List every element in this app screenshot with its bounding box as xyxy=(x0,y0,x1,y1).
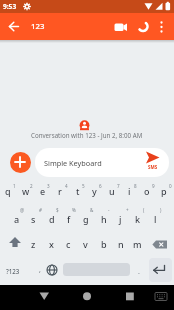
button[interactable] xyxy=(73,287,101,308)
staticText: k xyxy=(135,213,141,225)
button[interactable]: x xyxy=(43,236,60,251)
staticText: 0 xyxy=(169,183,172,189)
staticText: ( xyxy=(143,207,145,213)
button[interactable] xyxy=(152,287,172,308)
button[interactable] xyxy=(30,287,58,308)
button[interactable] xyxy=(10,152,31,173)
button[interactable] xyxy=(35,148,169,177)
button[interactable]: g xyxy=(77,211,94,226)
button[interactable]: o xyxy=(138,183,155,198)
button[interactable]: n xyxy=(112,236,129,251)
staticText: b xyxy=(101,238,107,250)
button[interactable] xyxy=(149,258,172,282)
button[interactable]: r xyxy=(51,183,68,198)
staticText: u xyxy=(109,185,115,197)
button[interactable]: y xyxy=(86,183,103,198)
staticText: 2 xyxy=(30,183,33,189)
button[interactable]: i xyxy=(121,183,138,198)
button[interactable]: z xyxy=(25,236,42,251)
staticText: n xyxy=(118,238,124,250)
staticText: 123 xyxy=(31,21,45,32)
button[interactable]: p xyxy=(155,183,172,198)
button[interactable]: h xyxy=(95,211,112,226)
staticText: p xyxy=(161,185,167,197)
staticText: r xyxy=(58,185,62,197)
button[interactable]: m xyxy=(129,236,146,251)
staticText: c xyxy=(66,238,71,250)
button[interactable]: f xyxy=(60,211,77,226)
staticText: s xyxy=(31,213,36,225)
staticText: Conversation with 123 - Jun 2, 8:00 AM xyxy=(31,131,143,139)
button[interactable]: b xyxy=(95,236,112,251)
staticText: z xyxy=(31,238,36,250)
staticText: Simple Keyboard xyxy=(44,158,102,168)
button[interactable] xyxy=(148,233,170,251)
staticText: 3 xyxy=(47,183,50,189)
staticText: % xyxy=(72,207,76,213)
staticText: g xyxy=(83,213,89,225)
button[interactable]: a xyxy=(8,211,25,226)
staticText: m xyxy=(133,238,142,250)
button[interactable]: t xyxy=(69,183,86,198)
staticText: . xyxy=(138,267,140,277)
staticText: ) xyxy=(160,207,162,213)
staticText: j xyxy=(119,213,122,225)
button[interactable] xyxy=(2,233,24,251)
staticText: 9:53 xyxy=(3,2,17,11)
staticText: x xyxy=(49,238,54,250)
button[interactable] xyxy=(4,16,24,37)
staticText: w xyxy=(22,185,30,197)
button[interactable] xyxy=(133,16,155,37)
staticText: i xyxy=(128,185,131,197)
staticText: 7 xyxy=(117,183,120,189)
staticText: & xyxy=(90,207,94,213)
button[interactable]: . xyxy=(133,265,145,279)
staticText: e xyxy=(40,185,46,197)
button[interactable]: w xyxy=(17,183,34,198)
staticText: + xyxy=(126,207,129,213)
button[interactable]: , xyxy=(34,263,46,277)
staticText: y xyxy=(92,185,97,197)
button[interactable]: q xyxy=(0,183,16,198)
button[interactable]: j xyxy=(112,211,129,226)
staticText: 1 xyxy=(13,183,16,189)
staticText: 5 xyxy=(82,183,85,189)
staticText: d xyxy=(49,213,55,225)
staticText: f xyxy=(67,213,71,225)
button[interactable]: ?123 xyxy=(2,264,24,278)
staticText: 4 xyxy=(65,183,68,189)
button[interactable]: d xyxy=(43,211,60,226)
staticText: o xyxy=(144,185,150,197)
button[interactable]: k xyxy=(129,211,146,226)
staticText: 6 xyxy=(99,183,102,189)
button[interactable] xyxy=(115,287,143,308)
staticText: 9 xyxy=(152,183,155,189)
button[interactable]: e xyxy=(34,183,51,198)
staticText: 8 xyxy=(134,183,137,189)
button[interactable]: l xyxy=(147,211,164,226)
staticText: l xyxy=(154,213,157,225)
button[interactable]: u xyxy=(103,183,120,198)
button[interactable] xyxy=(155,16,171,37)
staticText: $ xyxy=(56,207,59,213)
button[interactable] xyxy=(142,149,166,175)
staticText: # xyxy=(39,207,42,213)
staticText: @ xyxy=(20,207,25,213)
staticText: v xyxy=(83,238,88,250)
staticText: t xyxy=(76,185,80,197)
staticText: q xyxy=(5,185,11,197)
staticText: a xyxy=(14,213,20,225)
button[interactable]: v xyxy=(77,236,94,251)
staticText: , xyxy=(39,265,41,275)
staticText: ?123 xyxy=(6,267,20,275)
staticText: h xyxy=(101,213,107,225)
staticText: SMS xyxy=(148,164,158,170)
button[interactable]: c xyxy=(60,236,77,251)
staticText: - xyxy=(108,207,110,213)
button[interactable] xyxy=(110,16,132,37)
button[interactable]: s xyxy=(25,211,42,226)
button[interactable] xyxy=(44,262,60,278)
